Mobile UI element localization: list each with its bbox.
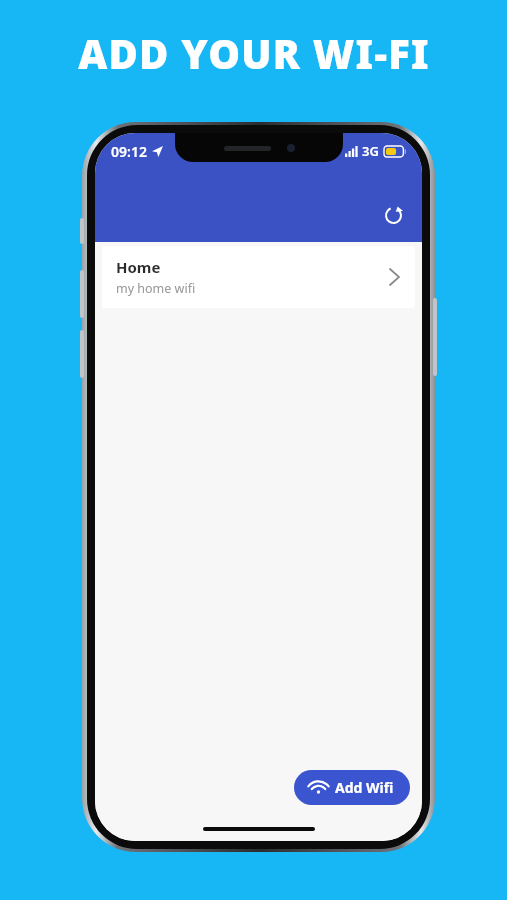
staticText: ADD YOUR WI-FI	[78, 26, 430, 80]
staticText: 3G	[362, 142, 379, 160]
staticText: Add Wifi	[335, 778, 394, 797]
staticText: Home	[116, 257, 161, 277]
staticText: my home wifi	[116, 280, 196, 297]
button[interactable]: Add Wifi	[294, 770, 410, 805]
staticText: 09:12	[111, 142, 147, 161]
button[interactable]: Home	[102, 246, 415, 308]
button[interactable]: Refresh	[372, 194, 414, 236]
